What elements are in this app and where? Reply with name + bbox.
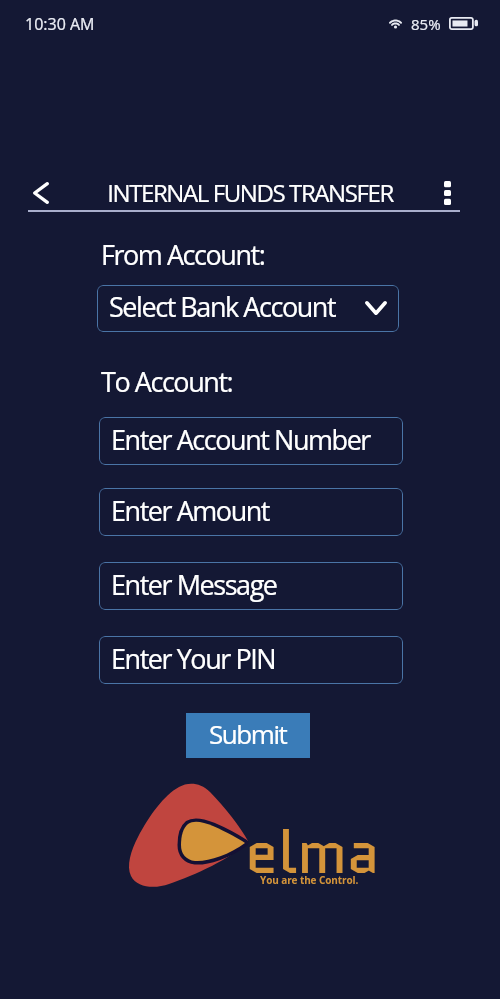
- button[interactable]: More options: [429, 172, 465, 214]
- staticText: Enter Amount: [111, 492, 270, 529]
- staticText: Select Bank Account: [109, 288, 336, 325]
- staticText: From Account:: [101, 236, 265, 273]
- button[interactable]: Enter Amount: [99, 488, 403, 536]
- button[interactable]: Select Bank Account: [97, 285, 399, 332]
- staticText: 10:30 AM: [25, 13, 95, 35]
- staticText: Enter Account Number: [111, 421, 370, 458]
- button[interactable]: Enter Your PIN: [99, 636, 403, 684]
- staticText: You are the Control.: [260, 873, 359, 887]
- staticText: To Account:: [101, 363, 233, 400]
- button[interactable]: Enter Account Number: [99, 417, 403, 465]
- staticText: Submit: [209, 716, 287, 751]
- staticText: elma: [245, 809, 380, 895]
- button[interactable]: Submit: [186, 713, 310, 758]
- staticText: Enter Message: [111, 566, 277, 603]
- staticText: 85%: [411, 14, 441, 34]
- button[interactable]: Enter Message: [99, 562, 403, 610]
- staticText: Enter Your PIN: [111, 640, 276, 677]
- staticText: INTERNAL FUNDS TRANSFER: [0, 176, 500, 209]
- button[interactable]: Back: [19, 172, 63, 214]
